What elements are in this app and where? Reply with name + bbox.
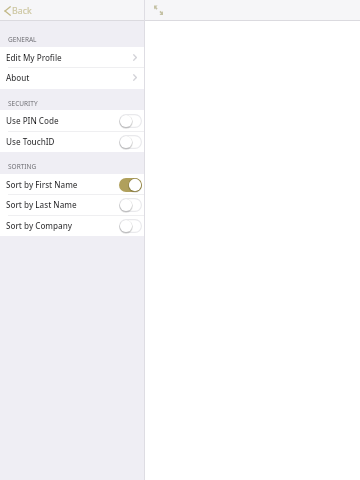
button[interactable]: Sort by Company	[0, 215, 144, 236]
staticText: Use PIN Code	[6, 115, 59, 126]
staticText: Sort by Last Name	[6, 199, 77, 210]
button[interactable]: Expand	[153, 5, 164, 17]
button[interactable]: Use PIN Code	[0, 110, 144, 131]
button[interactable]: Sort by First Name	[0, 174, 144, 195]
staticText: Sort by First Name	[6, 179, 78, 190]
staticText: Use TouchID	[6, 136, 55, 147]
staticText: Edit My Profile	[6, 52, 62, 63]
button[interactable]: About	[0, 67, 144, 88]
staticText: SORTING	[8, 162, 37, 171]
staticText: SECURITY	[8, 99, 38, 108]
staticText: GENERAL	[8, 35, 37, 44]
button[interactable]: Sort by Last Name	[0, 194, 144, 215]
staticText: Back	[12, 5, 32, 17]
staticText: About	[6, 72, 30, 83]
button[interactable]: Use TouchID	[0, 131, 144, 152]
staticText: Sort by Company	[6, 220, 73, 231]
button[interactable]: Edit My Profile	[0, 47, 144, 68]
button[interactable]: Back	[4, 5, 32, 17]
